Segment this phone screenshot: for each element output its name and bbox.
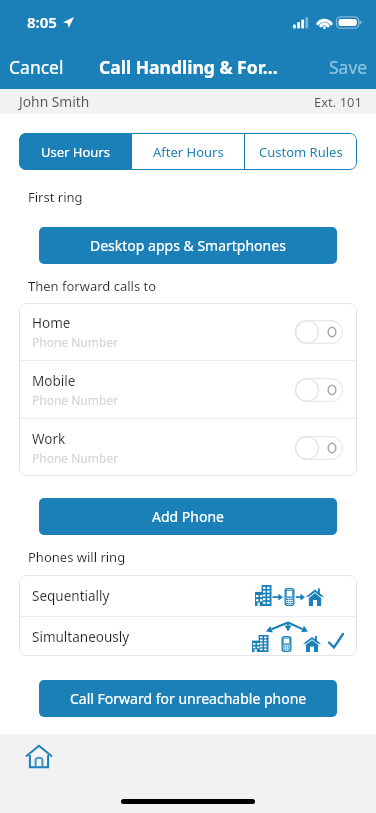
button[interactable]: Cancel — [0, 47, 74, 87]
staticText: John Smith — [19, 92, 90, 111]
staticText: Add Phone — [152, 507, 224, 526]
button[interactable]: After Hours — [132, 133, 244, 170]
button[interactable]: Toggle — [295, 378, 343, 402]
button[interactable]: Call Forward for unreachable phone — [39, 680, 337, 717]
staticText: Sequentially — [32, 587, 110, 605]
button[interactable]: Desktop apps & Smartphones — [39, 227, 337, 264]
button[interactable]: Work — [19, 419, 357, 476]
staticText: Simultaneously — [32, 628, 130, 646]
staticText: Ext. 101 — [314, 93, 362, 111]
staticText: User Hours — [41, 143, 110, 161]
staticText: Phone Number — [32, 334, 119, 350]
button[interactable]: Save — [319, 47, 376, 87]
staticText: Then forward calls to — [28, 277, 157, 295]
button[interactable]: Mobile — [19, 361, 357, 418]
staticText: Call Forward for unreachable phone — [70, 689, 307, 708]
staticText: After Hours — [153, 143, 224, 161]
button[interactable]: Simultaneously — [19, 617, 357, 656]
button[interactable]: Sequentially — [19, 575, 357, 616]
staticText: Phone Number — [32, 392, 119, 408]
staticText: Phones will ring — [28, 548, 126, 566]
button[interactable]: Custom Rules — [245, 133, 357, 170]
button[interactable]: Home — [20, 738, 58, 776]
staticText: 8:05 — [27, 12, 57, 32]
button[interactable]: User Hours — [19, 133, 131, 170]
button[interactable]: Home — [19, 303, 357, 360]
button[interactable]: Add Phone — [39, 498, 337, 535]
staticText: Home — [32, 314, 71, 332]
staticText: Call Handling & For… — [99, 55, 278, 79]
button[interactable]: Toggle — [295, 320, 343, 344]
button[interactable]: Toggle — [295, 436, 343, 460]
staticText: Mobile — [32, 372, 76, 390]
staticText: Desktop apps & Smartphones — [90, 236, 286, 255]
staticText: Work — [32, 430, 66, 448]
staticText: Custom Rules — [259, 143, 343, 161]
staticText: First ring — [28, 188, 83, 206]
staticText: Phone Number — [32, 450, 119, 466]
